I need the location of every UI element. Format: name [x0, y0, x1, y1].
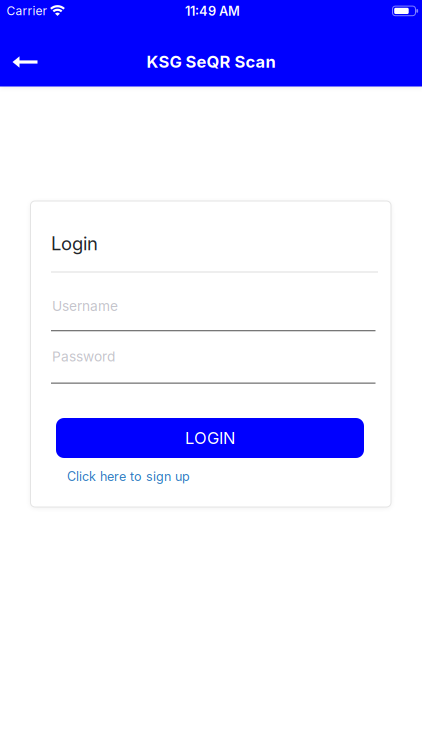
staticText: Password	[52, 348, 115, 365]
button[interactable]: Password	[51, 341, 375, 384]
staticText: Username	[52, 298, 118, 314]
staticText: 11:49 AM	[185, 3, 240, 19]
staticText: Carrier	[6, 4, 47, 18]
button[interactable]	[12, 56, 38, 68]
button[interactable]: Click here to sign up	[67, 466, 190, 486]
staticText: Login	[51, 232, 98, 255]
staticText: LOGIN	[185, 428, 235, 448]
button[interactable]: Username	[51, 291, 375, 331]
staticText: Click here to sign up	[67, 469, 190, 484]
staticText: KSG SeQR Scan	[146, 52, 275, 72]
button[interactable]: LOGIN	[56, 418, 364, 458]
